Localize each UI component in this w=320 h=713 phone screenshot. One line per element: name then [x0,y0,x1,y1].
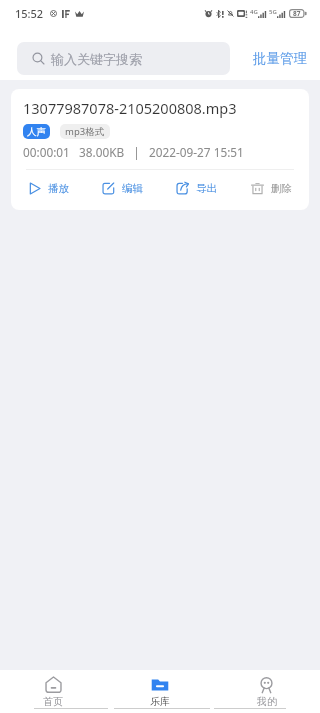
staticText: 批量管理 [253,50,307,67]
staticText: 删除 [271,182,292,195]
button[interactable]: 我的 [213,670,320,713]
button[interactable]: 导出 [159,168,234,208]
staticText: 乐库 [150,695,170,708]
staticText: 4G [250,8,258,16]
button[interactable]: 13077987078-2105200808.mp3 [11,89,309,210]
staticText: 87 [293,9,301,18]
staticText: 播放 [48,182,69,195]
button[interactable]: 编辑 [85,168,159,208]
staticText: 我的 [257,695,277,708]
button[interactable]: 删除 [234,168,309,208]
button[interactable]: 乐库 [106,670,213,713]
staticText: 编辑 [122,182,143,195]
staticText: 13077987078-2105200808.mp3 [23,98,237,118]
button[interactable]: 播放 [11,168,85,208]
staticText: 首页 [43,695,63,708]
button[interactable]: 批量管理 [251,44,309,73]
staticText: 5G [269,8,277,16]
staticText: 00:00:01 38.00KB | 2022-09-27 15:51 [23,144,244,160]
staticText: 人声 [27,126,46,138]
staticText: mp3格式 [65,125,105,138]
button[interactable]: 首页 [0,670,106,713]
button[interactable]: 输入关键字搜索 [17,42,230,75]
staticText: 输入关键字搜索 [51,51,142,67]
staticText: 15:52 [15,6,44,21]
staticText: 导出 [196,182,217,195]
